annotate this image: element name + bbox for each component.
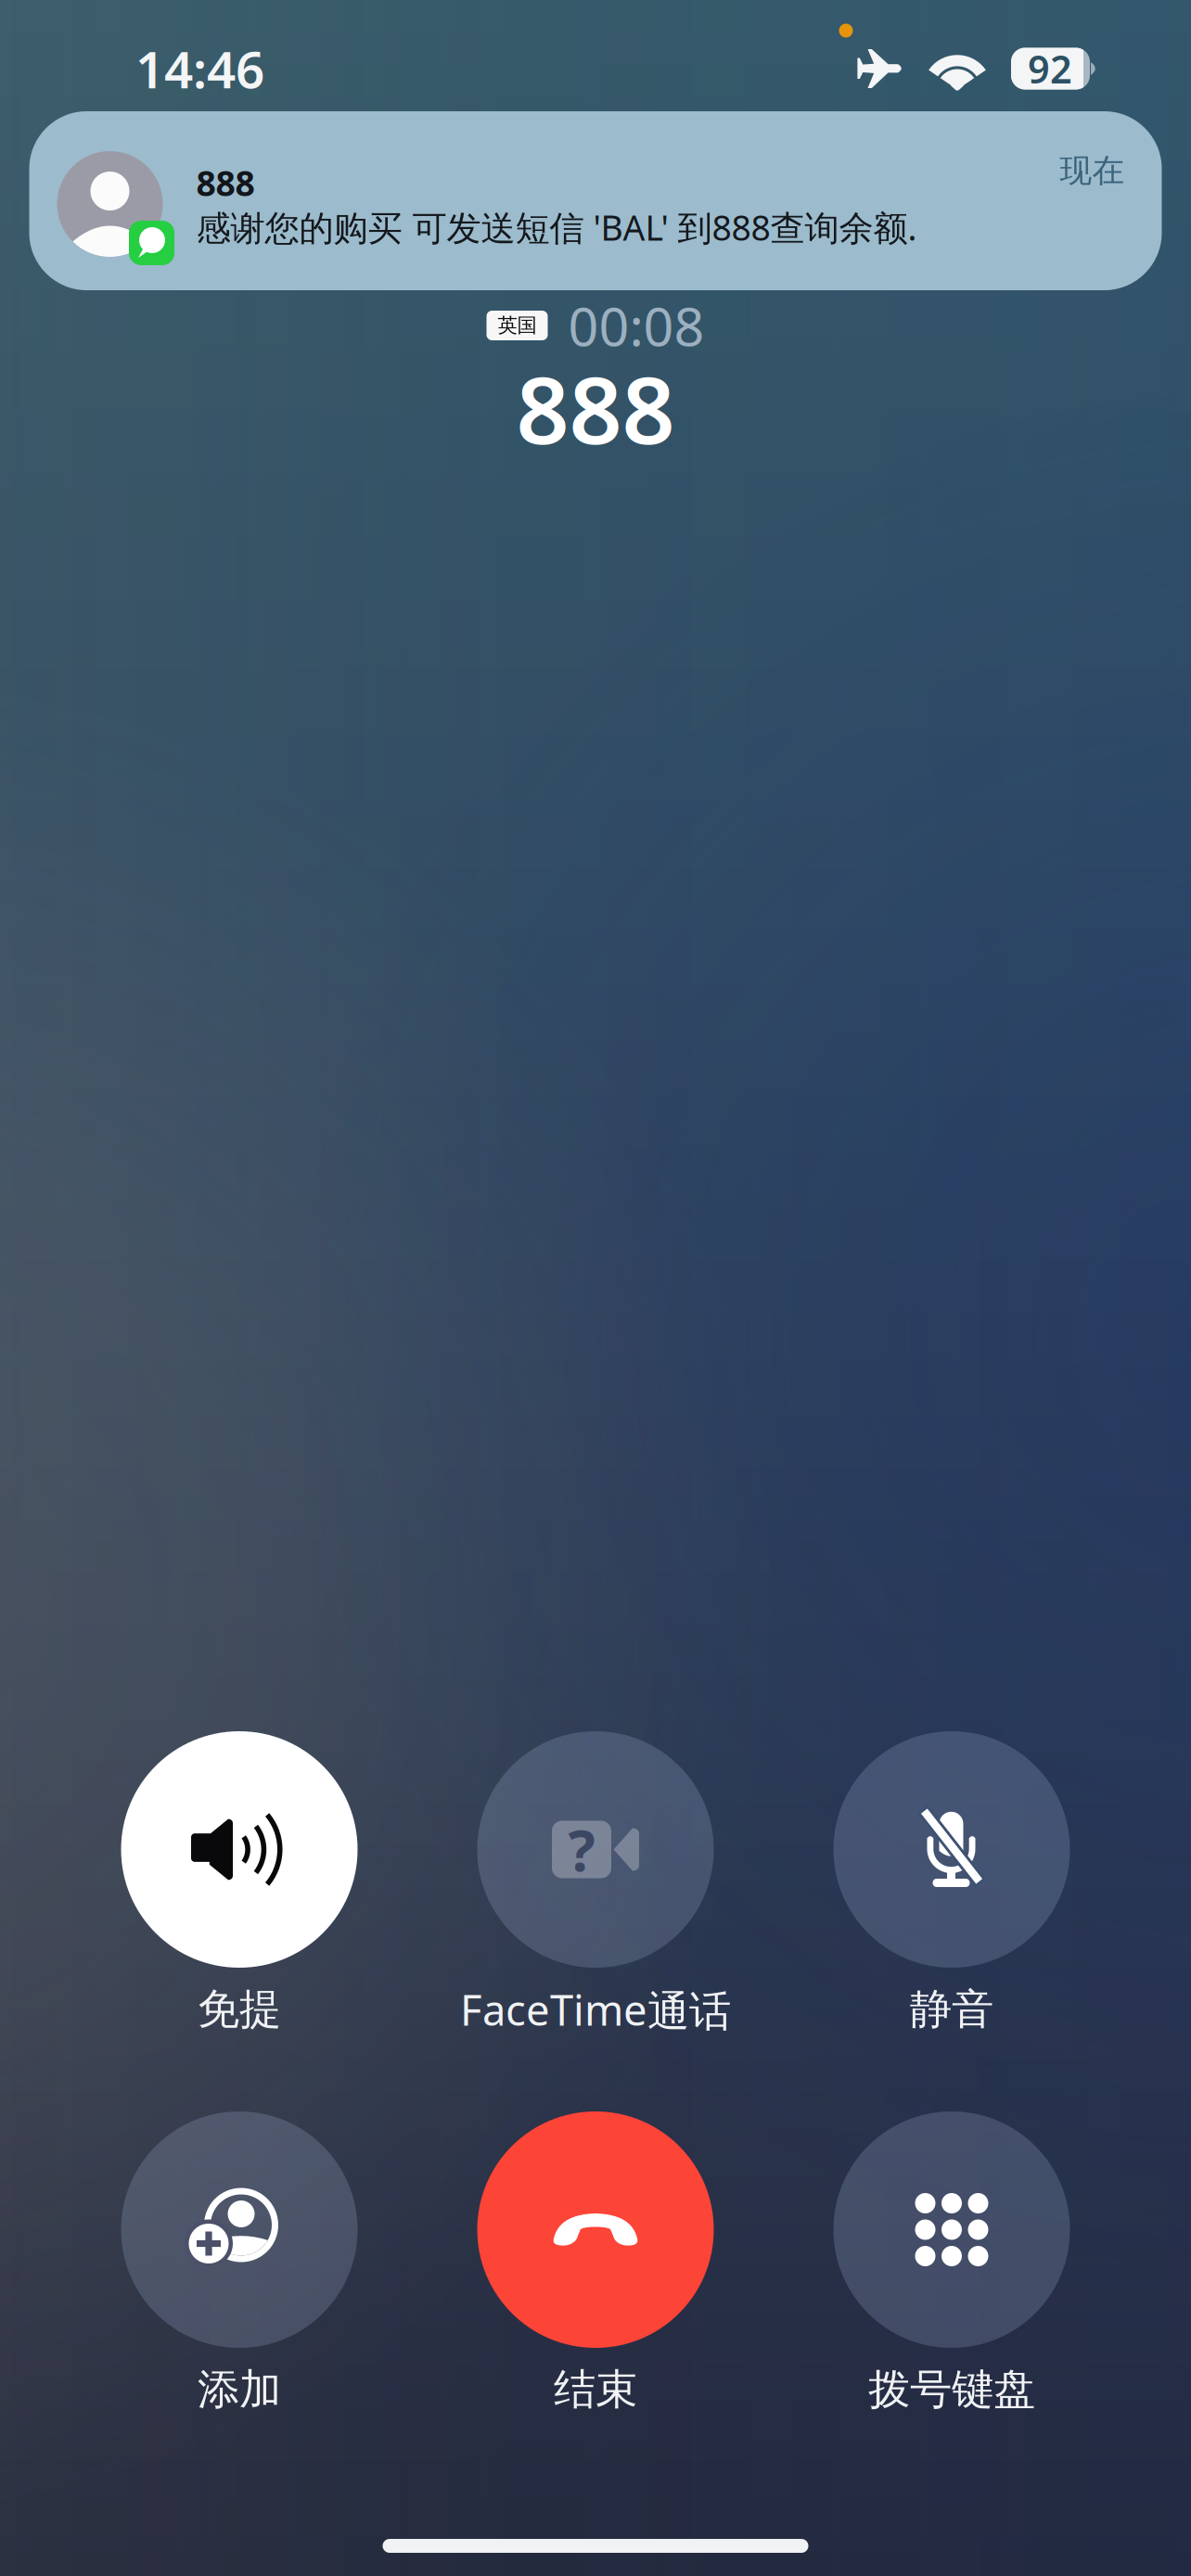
button[interactable]: 888 [29, 111, 1162, 290]
staticText: 拨号键盘 [868, 2364, 1035, 2415]
button[interactable]: Add call [121, 2111, 358, 2348]
button[interactable]: FaceTime [477, 1731, 714, 1968]
button[interactable]: Keypad [833, 2111, 1070, 2348]
staticText: 结束 [554, 2364, 637, 2415]
staticText: 92 [1028, 43, 1072, 94]
staticText: 888 [516, 346, 675, 470]
staticText: 英国 [498, 313, 537, 338]
staticText: 免提 [198, 1984, 281, 2035]
staticText: 感谢您的购买 可发送短信 'BAL' 到888查询余额. [196, 204, 917, 250]
button[interactable]: End call [477, 2111, 714, 2348]
staticText: 添加 [198, 2364, 281, 2415]
staticText: 现在 [1060, 151, 1125, 191]
button[interactable]: Mute [833, 1731, 1070, 1968]
button[interactable]: Speaker [121, 1731, 358, 1968]
staticText: 14:46 [135, 35, 264, 102]
staticText: FaceTime通话 [460, 1981, 731, 2037]
staticText: 888 [196, 160, 255, 206]
staticText: 00:08 [568, 290, 704, 361]
staticText: 静音 [910, 1984, 993, 2035]
staticText: ? [568, 1812, 595, 1887]
